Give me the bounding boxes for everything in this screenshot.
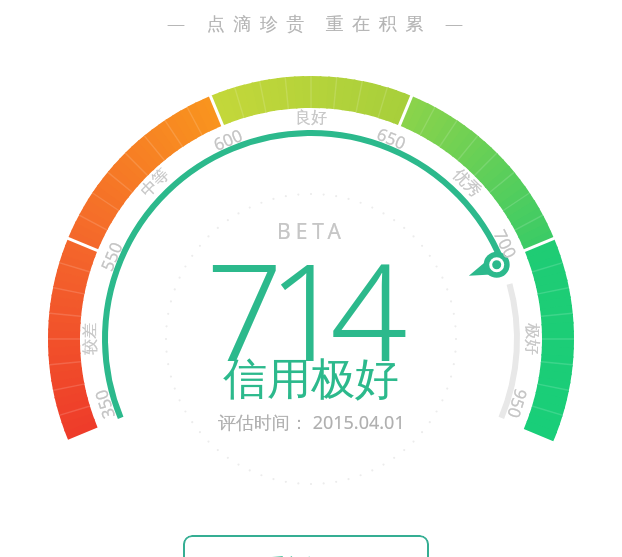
staticText: 重新评估 [266,554,346,557]
staticText: 714 [206,217,393,401]
staticText: 极好 [522,323,542,355]
staticText: 较差 [80,323,100,355]
staticText: 550 [95,238,128,274]
staticText: 600 [210,123,246,156]
staticText: 350 [89,386,120,422]
staticText: 评估时间： 2015.04.01 [218,410,405,435]
staticText: 中等 [137,165,173,201]
staticText: 950 [502,386,533,422]
staticText: 信用极好 [223,352,399,407]
staticText: 650 [374,122,410,155]
staticText: BETA [277,217,346,245]
staticText: 优秀 [449,165,485,201]
staticText: — 点滴珍贵 重在积累 — [167,11,472,36]
staticText: 700 [489,226,522,263]
button[interactable]: 重新评估 [183,535,429,557]
staticText: 良好 [295,108,327,128]
